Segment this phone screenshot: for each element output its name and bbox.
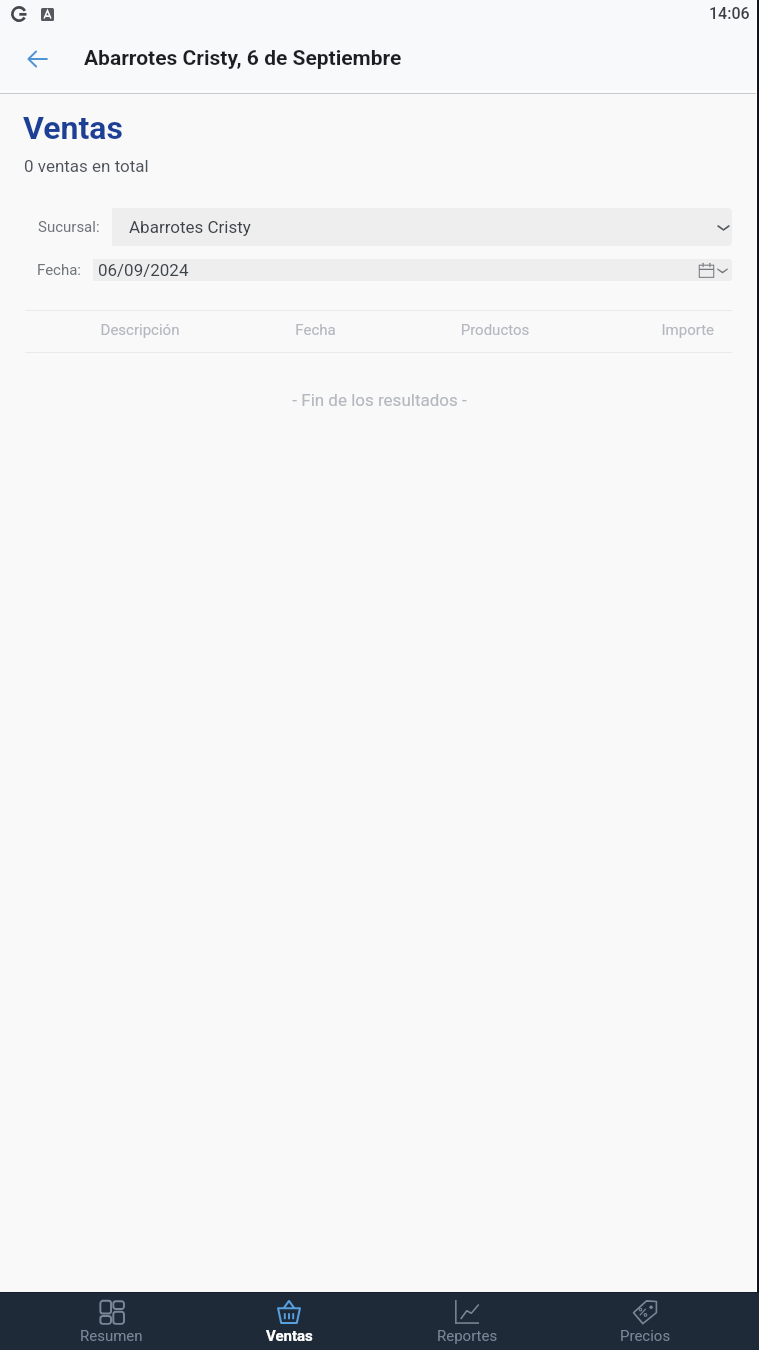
staticText: Ventas bbox=[23, 109, 123, 147]
staticText: Descripción bbox=[25, 321, 255, 339]
button[interactable]: Precios bbox=[556, 1293, 734, 1350]
button[interactable]: Resumen bbox=[23, 1293, 200, 1350]
button[interactable]: Sucursal: bbox=[25, 208, 732, 246]
staticText: Ventas bbox=[266, 1327, 313, 1345]
staticText: 14:06 bbox=[709, 4, 750, 23]
staticText: Reportes bbox=[437, 1327, 498, 1345]
staticText: 0 ventas en total bbox=[24, 156, 149, 176]
staticText: Importe bbox=[614, 321, 714, 339]
button[interactable]: Reportes bbox=[378, 1293, 556, 1350]
staticText: Fecha bbox=[255, 321, 376, 339]
staticText: Resumen bbox=[80, 1327, 143, 1345]
staticText: Abarrotes Cristy bbox=[129, 217, 251, 237]
staticText: Abarrotes Cristy, 6 de Septiembre bbox=[84, 46, 402, 71]
staticText: Fecha: bbox=[37, 261, 81, 279]
staticText: Precios bbox=[620, 1327, 671, 1345]
button[interactable]: Back bbox=[15, 37, 59, 81]
staticText: Productos bbox=[376, 321, 614, 339]
staticText: 06/09/2024 bbox=[98, 260, 189, 280]
button[interactable]: Fecha: bbox=[25, 259, 732, 281]
button[interactable]: Ventas bbox=[200, 1293, 378, 1350]
staticText: - Fin de los resultados - bbox=[0, 390, 759, 410]
staticText: Sucursal: bbox=[38, 218, 100, 236]
